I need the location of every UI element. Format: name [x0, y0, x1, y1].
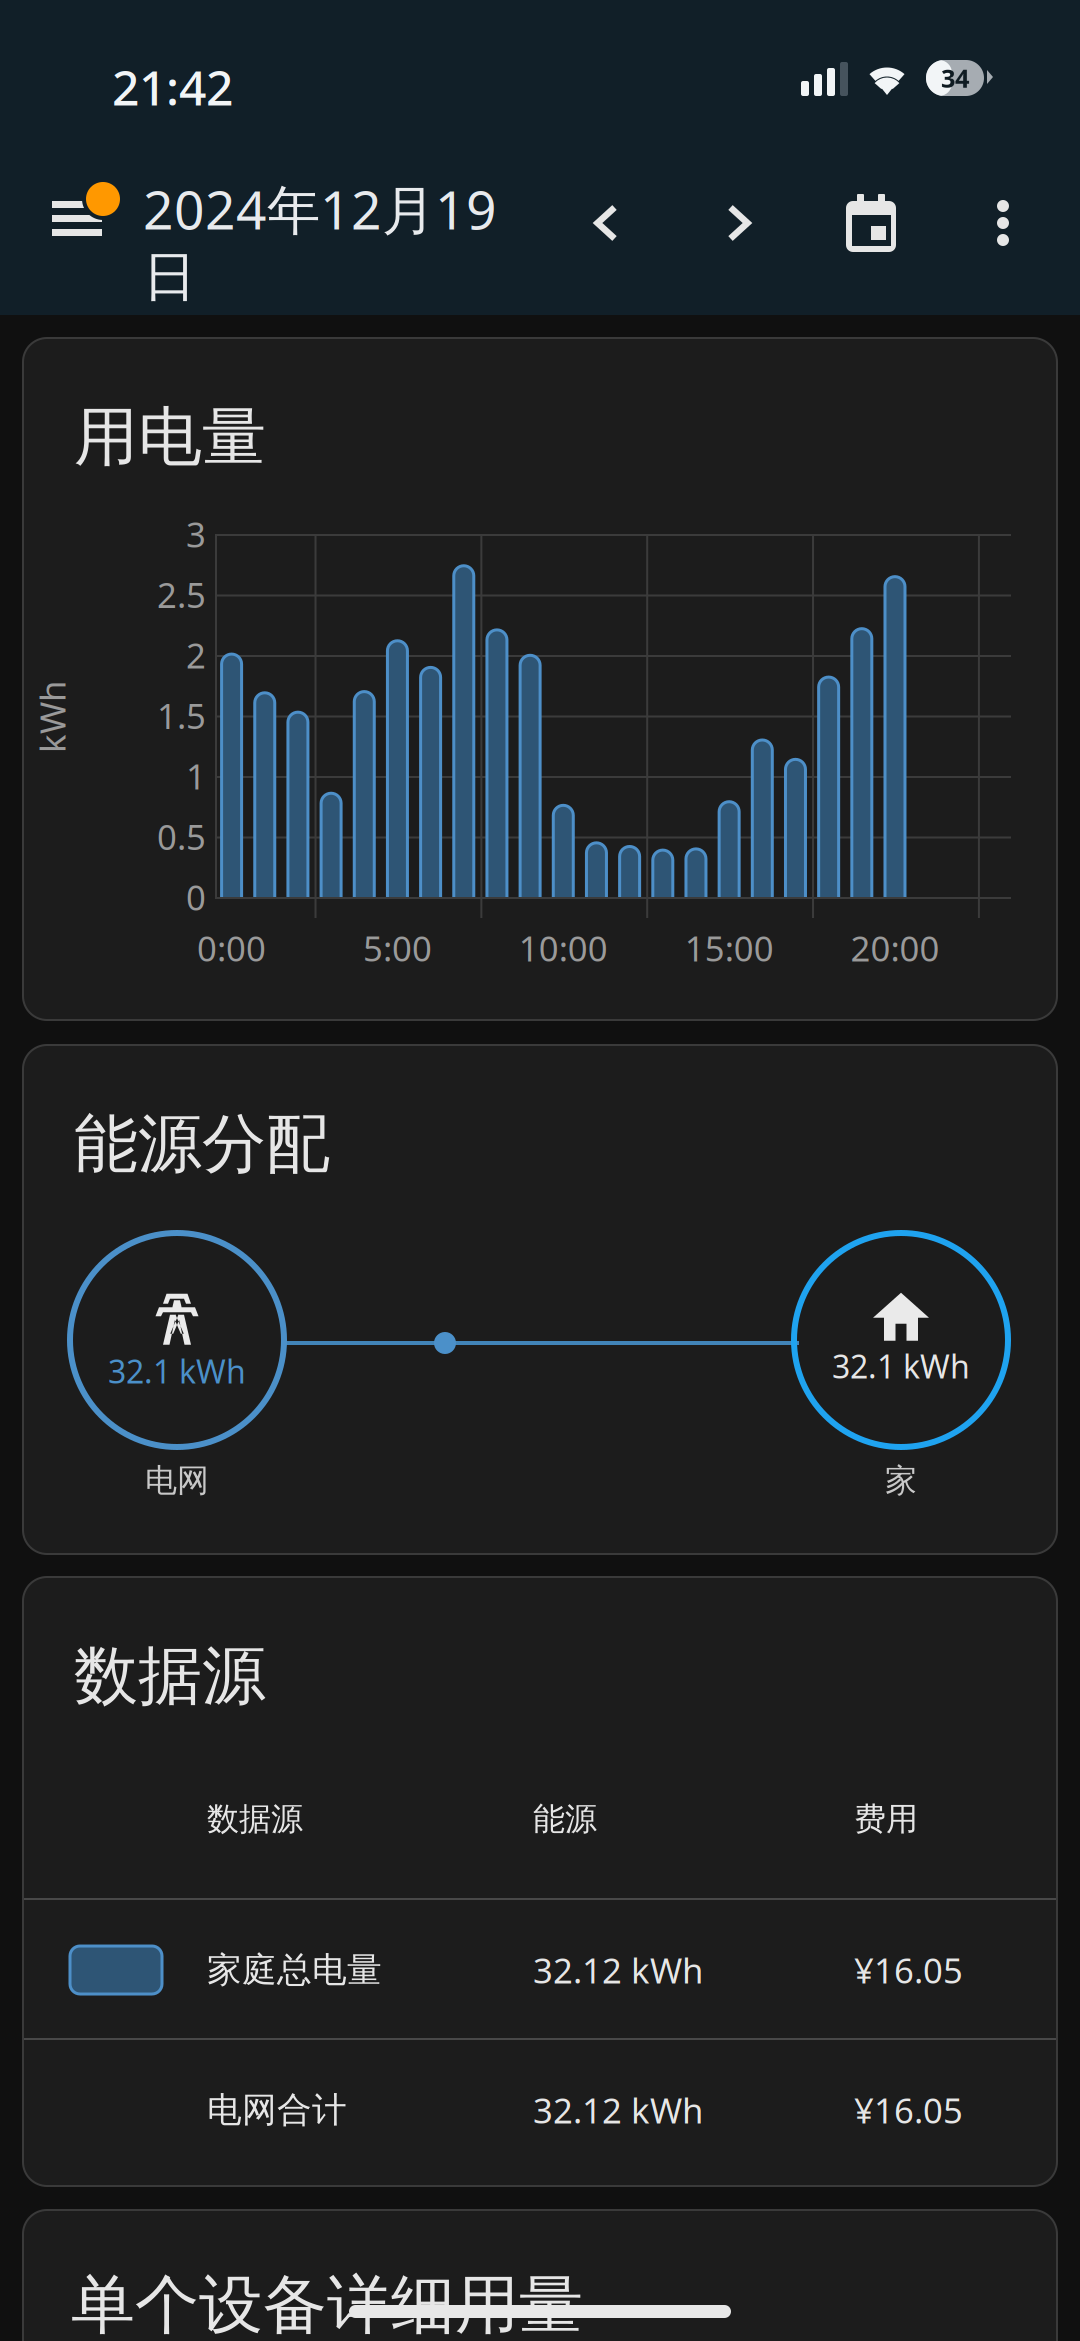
staticText: 0	[186, 874, 206, 920]
staticText: 5:00	[363, 925, 432, 971]
staticText: 能源	[533, 1799, 597, 1839]
staticText: 2.5	[157, 571, 206, 617]
staticText: ¥16.05	[854, 1947, 963, 1993]
staticText: 用电量	[74, 398, 266, 477]
staticText: 32.12 kWh	[533, 2087, 703, 2133]
staticText: 家	[885, 1461, 917, 1500]
staticText: 电网	[145, 1461, 209, 1500]
staticText: 数据源	[207, 1799, 303, 1839]
staticText: 数据源	[74, 1637, 266, 1716]
staticText: 2024年12月19日	[143, 173, 497, 310]
button[interactable]: Menu	[0, 132, 110, 250]
staticText: 32.1 kWh	[108, 1350, 246, 1392]
staticText: 3	[186, 511, 206, 557]
staticText: 1.5	[157, 692, 206, 738]
staticText: 电网合计	[207, 2089, 347, 2131]
staticText: 0:00	[197, 925, 266, 971]
button[interactable]: Next day	[0, 132, 110, 250]
staticText: 费用	[854, 1799, 918, 1839]
button[interactable]: Previous day	[0, 132, 110, 250]
staticText: ¥16.05	[854, 2087, 963, 2133]
staticText: 15:00	[685, 925, 774, 971]
staticText: 1	[186, 753, 206, 799]
staticText: 单个设备详细用量	[71, 2266, 583, 2341]
staticText: 0.5	[157, 813, 206, 859]
staticText: 2	[186, 632, 206, 678]
staticText: kWh	[16, 694, 88, 740]
button[interactable]: Choose date	[0, 132, 110, 250]
staticText: 10:00	[519, 925, 608, 971]
staticText: 32.12 kWh	[533, 1947, 703, 1993]
staticText: 20:00	[850, 925, 939, 971]
button[interactable]: More options	[0, 132, 110, 250]
staticText: 能源分配	[74, 1105, 330, 1184]
staticText: 32.1 kWh	[832, 1345, 970, 1387]
staticText: 家庭总电量	[207, 1949, 382, 1991]
staticText: 34	[941, 61, 969, 95]
staticText: 21:42	[112, 55, 233, 119]
